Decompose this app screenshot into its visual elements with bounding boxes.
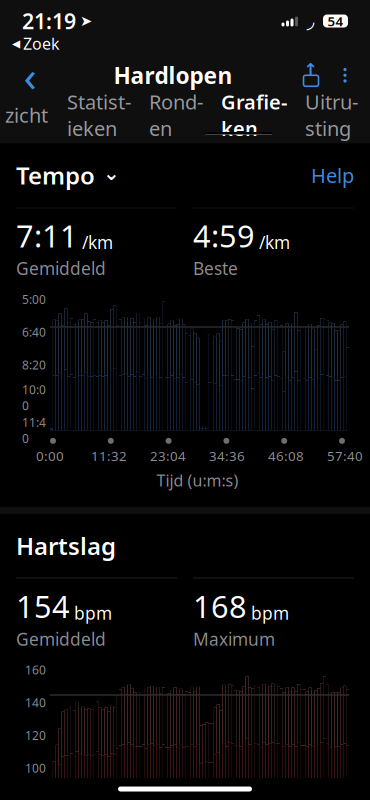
staticText: ⌄ bbox=[103, 162, 120, 184]
staticText: 8:20 bbox=[22, 357, 46, 373]
staticText: 168 bbox=[193, 586, 247, 626]
button[interactable]: More options bbox=[328, 55, 362, 95]
staticText: Tijd (u:m:s) bbox=[156, 470, 238, 491]
staticText: Statistieken bbox=[67, 88, 131, 141]
staticText: Ronden bbox=[149, 88, 203, 141]
staticText: Tempo bbox=[16, 159, 95, 191]
staticText: 4:59 bbox=[193, 215, 255, 256]
staticText: bpm bbox=[251, 601, 289, 624]
staticText: 54 bbox=[327, 12, 343, 30]
staticText: ➤ bbox=[80, 13, 92, 29]
staticText: 34:36 bbox=[209, 447, 245, 465]
staticText: 21:19 bbox=[22, 7, 76, 35]
staticText: 46:08 bbox=[268, 447, 304, 465]
button[interactable]: Statistieken bbox=[58, 88, 140, 141]
button[interactable]: Grafieken bbox=[212, 88, 296, 141]
button[interactable]: Ronden bbox=[140, 88, 212, 141]
staticText: Gemiddeld bbox=[16, 627, 106, 650]
staticText: 10:00 bbox=[22, 382, 46, 414]
staticText: Hartslag bbox=[16, 530, 116, 562]
staticText: /km bbox=[82, 231, 113, 254]
button[interactable]: Tempo bbox=[16, 159, 120, 191]
staticText: Maximum bbox=[193, 627, 275, 650]
staticText: Grafieken bbox=[221, 88, 287, 141]
button[interactable]: Share bbox=[294, 55, 328, 95]
staticText: ◞ bbox=[306, 10, 314, 32]
staticText: zicht bbox=[5, 102, 48, 128]
staticText: Uitrusting bbox=[305, 88, 358, 141]
staticText: 57:40 bbox=[327, 447, 363, 465]
staticText: Zoek bbox=[23, 33, 60, 54]
staticText: bpm bbox=[74, 601, 112, 624]
staticText: 160 bbox=[25, 662, 46, 678]
staticText: 100 bbox=[25, 760, 46, 776]
button[interactable]: zicht bbox=[5, 102, 58, 128]
staticText: 11:40 bbox=[22, 414, 46, 446]
staticText: 5:00 bbox=[22, 291, 46, 307]
staticText: Help bbox=[311, 162, 354, 188]
staticText: 23:04 bbox=[150, 447, 186, 465]
button[interactable]: Help bbox=[311, 162, 354, 188]
staticText: ‹ bbox=[23, 47, 36, 104]
button[interactable]: Uitrusting bbox=[296, 88, 367, 141]
staticText: Hardlopen bbox=[113, 60, 232, 90]
staticText: 120 bbox=[25, 727, 46, 743]
staticText: 11:32 bbox=[91, 447, 127, 465]
staticText: ◀ bbox=[12, 38, 20, 50]
staticText: Gemiddeld bbox=[16, 257, 106, 280]
staticText: 7:11 bbox=[16, 215, 78, 256]
staticText: 154 bbox=[16, 586, 70, 626]
staticText: ↑ bbox=[303, 60, 318, 80]
button[interactable]: Back bbox=[8, 55, 52, 95]
staticText: 0:00 bbox=[36, 447, 64, 465]
staticText: 140 bbox=[25, 695, 46, 711]
staticText: /km bbox=[259, 231, 290, 254]
staticText: 6:40 bbox=[22, 324, 46, 340]
staticText: Beste bbox=[193, 257, 238, 280]
